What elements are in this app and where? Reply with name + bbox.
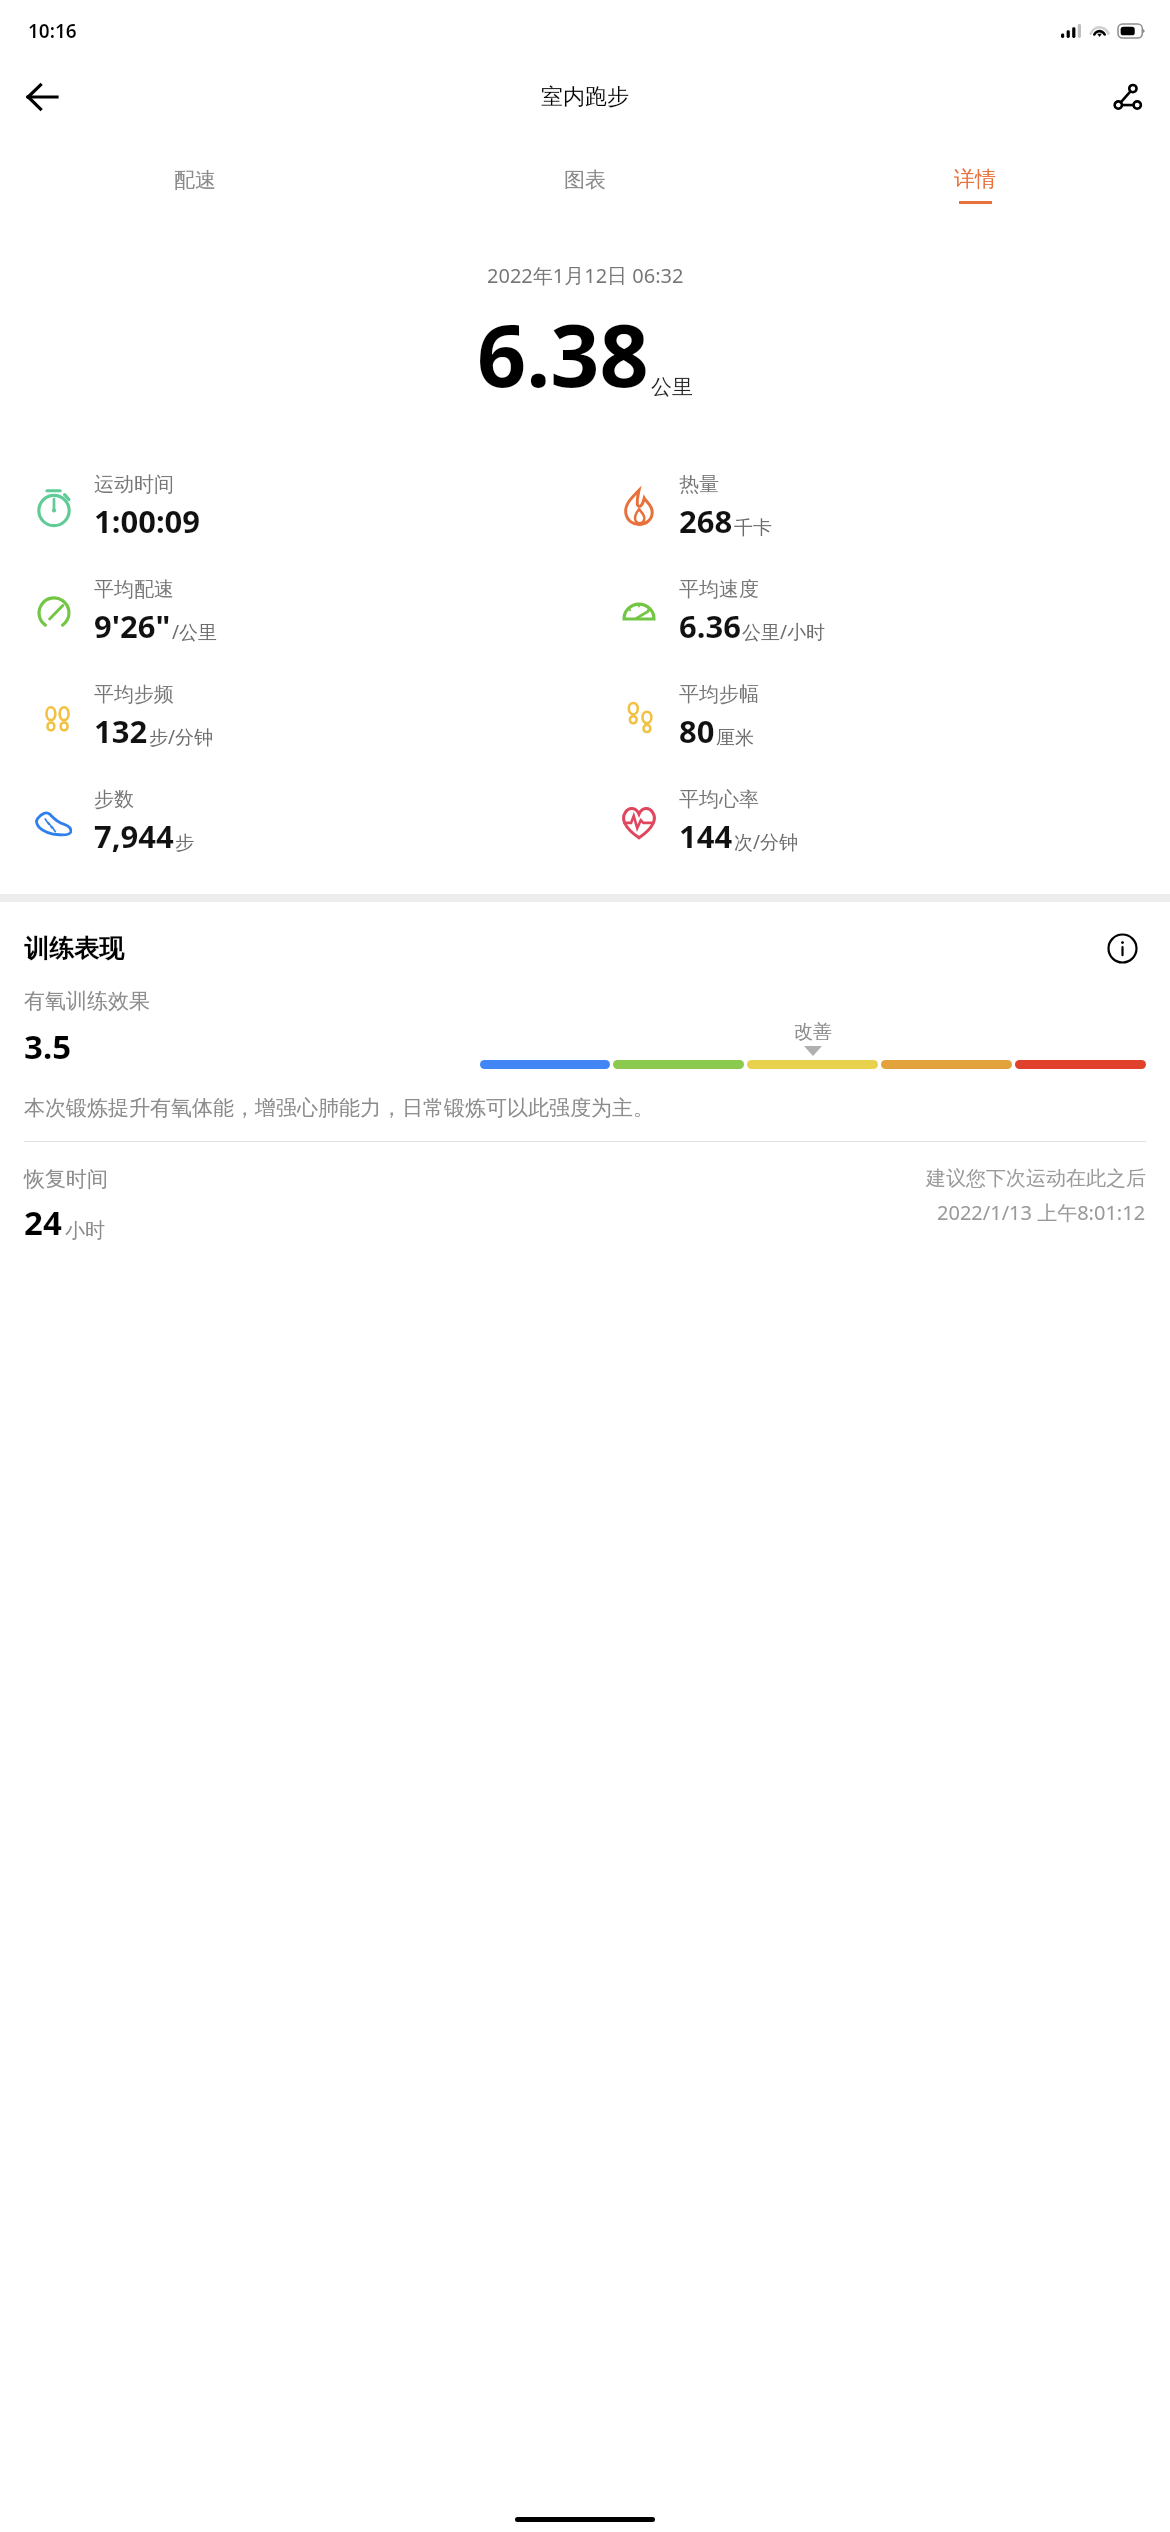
button[interactable]: 平均心率	[585, 769, 1170, 874]
button[interactable]: 平均步幅	[585, 664, 1170, 769]
staticText: 平均步幅	[679, 682, 759, 707]
button[interactable]: 热量	[585, 454, 1170, 559]
button[interactable]: Info	[1098, 924, 1146, 972]
staticText: 室内跑步	[541, 83, 629, 111]
staticText: 有氧训练效果	[24, 988, 150, 1014]
staticText: 公里	[651, 374, 693, 400]
staticText: 6.36	[679, 605, 741, 647]
staticText: 步	[175, 831, 194, 855]
button[interactable]: 配速	[0, 137, 390, 232]
button[interactable]: 运动时间	[0, 454, 585, 559]
staticText: 24	[24, 1200, 62, 1245]
staticText: 配速	[174, 167, 216, 193]
staticText: 改善	[794, 1020, 832, 1044]
staticText: 千卡	[734, 516, 772, 540]
staticText: 1:00:09	[94, 500, 201, 542]
staticText: 9'26"	[94, 605, 171, 647]
button[interactable]: 详情	[780, 137, 1170, 232]
staticText: 10:16	[28, 18, 77, 44]
button[interactable]: 平均步频	[0, 664, 585, 769]
staticText: 运动时间	[94, 472, 174, 497]
staticText: 平均速度	[679, 577, 759, 602]
staticText: 3.5	[24, 1024, 72, 1069]
staticText: 公里/小时	[742, 619, 826, 645]
staticText: 厘米	[716, 726, 754, 750]
staticText: 次/分钟	[734, 829, 799, 855]
staticText: 80	[679, 710, 715, 752]
staticText: 144	[679, 815, 733, 857]
staticText: /公里	[172, 619, 218, 645]
staticText: 图表	[564, 167, 606, 193]
staticText: 2022/1/13 上午8:01:12	[937, 1199, 1146, 1226]
staticText: 热量	[679, 472, 719, 497]
button[interactable]: Back	[12, 67, 72, 127]
staticText: 平均心率	[679, 787, 759, 812]
button[interactable]: 步数	[0, 769, 585, 874]
staticText: 7,944	[94, 815, 174, 857]
button[interactable]: 平均配速	[0, 559, 585, 664]
staticText: 平均配速	[94, 577, 174, 602]
staticText: 训练表现	[24, 933, 124, 964]
staticText: 2022年1月12日 06:32	[487, 262, 684, 289]
staticText: 132	[94, 710, 148, 752]
button[interactable]: 平均速度	[585, 559, 1170, 664]
staticText: 步数	[94, 787, 134, 812]
button[interactable]: Share	[1098, 68, 1156, 126]
button[interactable]: 图表	[390, 137, 780, 232]
staticText: 6.38	[477, 295, 649, 412]
staticText: 268	[679, 500, 733, 542]
staticText: 建议您下次运动在此之后	[926, 1166, 1146, 1191]
staticText: 小时	[65, 1218, 105, 1243]
staticText: 步/分钟	[149, 724, 214, 750]
staticText: 本次锻炼提升有氧体能，增强心肺能力，日常锻炼可以此强度为主。	[24, 1095, 654, 1121]
staticText: 详情	[954, 166, 996, 192]
staticText: 恢复时间	[24, 1166, 108, 1192]
staticText: 平均步频	[94, 682, 174, 707]
